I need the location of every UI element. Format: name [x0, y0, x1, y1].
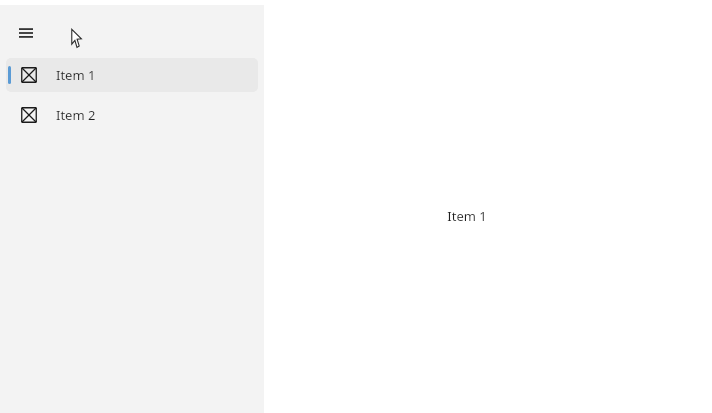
- button[interactable]: Menu: [12, 21, 40, 45]
- button[interactable]: Item 1: [6, 58, 258, 92]
- staticText: Item 1: [56, 66, 96, 84]
- staticText: Item 2: [56, 106, 96, 124]
- button[interactable]: Item 2: [6, 98, 258, 132]
- staticText: Item 1: [447, 207, 487, 225]
